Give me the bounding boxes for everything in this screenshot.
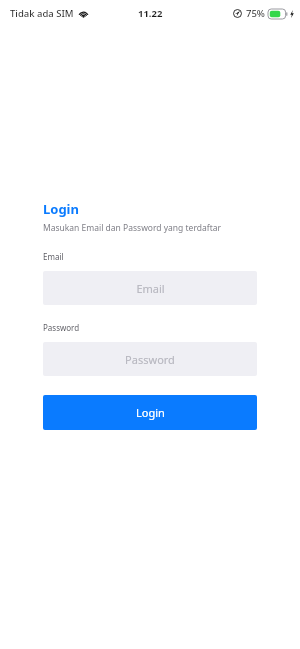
- staticText: Login: [136, 405, 165, 420]
- button[interactable]: Login: [43, 395, 257, 430]
- staticText: Password: [125, 352, 175, 367]
- staticText: 75%: [246, 7, 265, 20]
- staticText: Tidak ada SIM: [10, 7, 74, 20]
- staticText: 11.22: [138, 7, 163, 20]
- staticText: Email: [136, 281, 165, 296]
- staticText: Masukan Email dan Password yang terdafta…: [43, 222, 221, 234]
- staticText: Login: [43, 200, 79, 218]
- button[interactable]: Email: [43, 271, 257, 305]
- staticText: Email: [43, 251, 64, 262]
- staticText: Password: [43, 322, 80, 333]
- button[interactable]: Password: [43, 342, 257, 376]
